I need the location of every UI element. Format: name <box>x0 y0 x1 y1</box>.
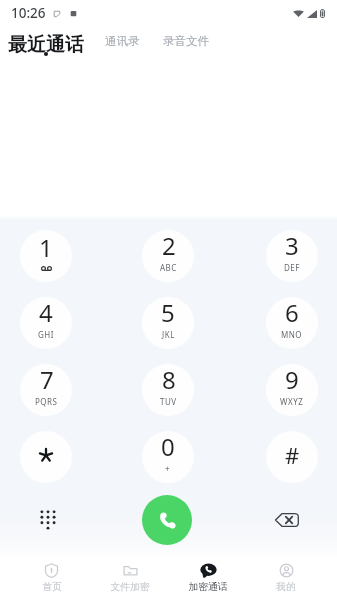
staticText: 2 <box>162 230 176 262</box>
staticText: 最近通话 <box>8 33 84 57</box>
button[interactable]: 2 <box>142 230 194 282</box>
button[interactable]: 9 <box>266 364 318 416</box>
button[interactable]: # <box>266 431 318 483</box>
staticText: 4 <box>39 297 53 329</box>
staticText: 加密通话 <box>188 581 228 593</box>
staticText: # <box>285 440 300 470</box>
staticText: 6 <box>285 297 299 329</box>
button[interactable]: 最近通话 <box>4 29 88 61</box>
staticText: GHI <box>38 329 54 340</box>
staticText: PQRS <box>35 396 58 407</box>
button[interactable]: Call <box>142 495 192 545</box>
button[interactable]: 文件加密 <box>91 555 169 600</box>
button[interactable]: Keypad <box>22 494 73 545</box>
staticText: 文件加密 <box>110 581 150 593</box>
staticText: TUV <box>160 396 177 407</box>
staticText: 首页 <box>42 581 62 593</box>
staticText: + <box>165 463 171 474</box>
button[interactable]: 4 <box>20 297 72 349</box>
button[interactable]: 首页 <box>12 555 91 600</box>
staticText: WXYZ <box>280 396 304 407</box>
staticText: 我的 <box>276 581 296 593</box>
button[interactable]: 加密通话 <box>169 555 247 600</box>
staticText: 7 <box>40 364 54 396</box>
button[interactable]: 5 <box>142 297 194 349</box>
staticText: 3 <box>285 230 299 262</box>
staticText: 5 <box>161 297 175 329</box>
staticText: ABC <box>160 262 177 273</box>
staticText: 8 <box>162 364 176 396</box>
button[interactable]: 我的 <box>247 555 325 600</box>
staticText: MNO <box>281 329 303 340</box>
staticText: 9 <box>285 364 299 396</box>
button[interactable]: 通讯录 <box>101 30 144 52</box>
staticText: 1 <box>39 231 53 264</box>
button[interactable] <box>20 431 72 483</box>
staticText: 10:26 <box>11 4 46 22</box>
staticText: 通讯录 <box>105 34 140 48</box>
button[interactable]: Delete <box>261 494 312 545</box>
staticText: 0 <box>161 431 175 463</box>
button[interactable]: 6 <box>266 297 318 349</box>
button[interactable]: 7 <box>20 364 72 416</box>
staticText: 录音文件 <box>163 34 209 48</box>
button[interactable]: 1 <box>20 230 72 282</box>
staticText: DEF <box>284 262 300 273</box>
staticText: JKL <box>162 329 175 340</box>
button[interactable]: 录音文件 <box>159 30 213 52</box>
button[interactable]: 0 <box>142 431 194 483</box>
button[interactable]: 8 <box>142 364 194 416</box>
button[interactable]: 3 <box>266 230 318 282</box>
